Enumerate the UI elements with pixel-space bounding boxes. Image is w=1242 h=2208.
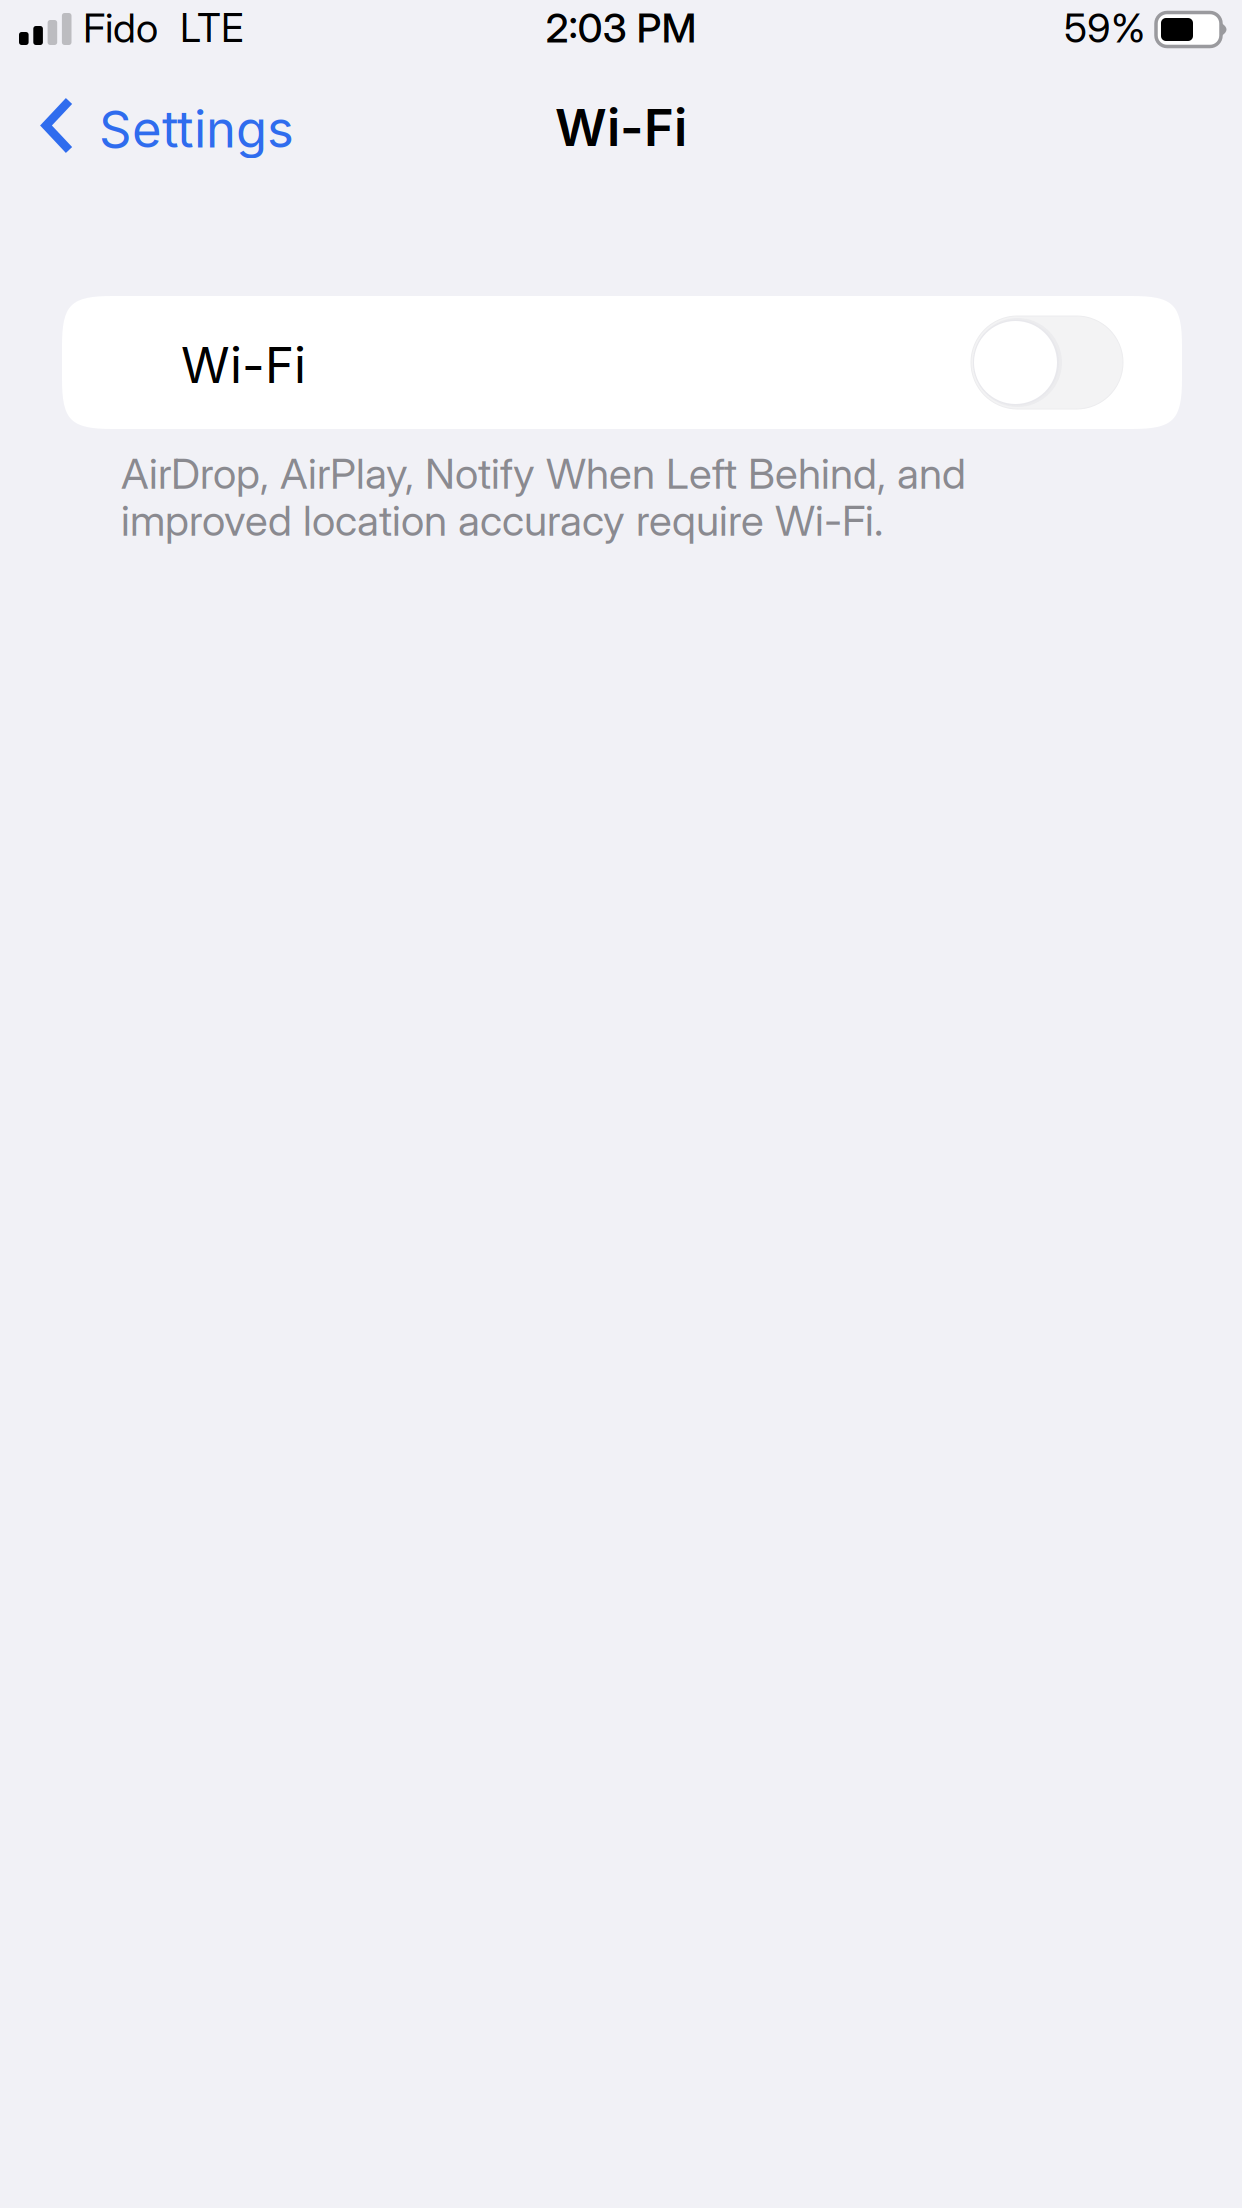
button[interactable]: Off — [62, 296, 1182, 429]
staticText: Wi-Fi — [181, 335, 306, 395]
staticText: Wi-Fi — [555, 97, 687, 158]
staticText: AirDrop, AirPlay, Notify When Left Behin… — [121, 448, 966, 499]
staticText: 2:03 PM — [545, 4, 696, 52]
staticText: improved location accuracy require Wi-Fi… — [121, 495, 883, 546]
button[interactable]: Settings — [0, 56, 318, 188]
staticText: Fido — [83, 4, 158, 52]
staticText: Settings — [99, 98, 294, 160]
staticText: LTE — [180, 5, 244, 51]
staticText: 59% — [1064, 4, 1145, 52]
